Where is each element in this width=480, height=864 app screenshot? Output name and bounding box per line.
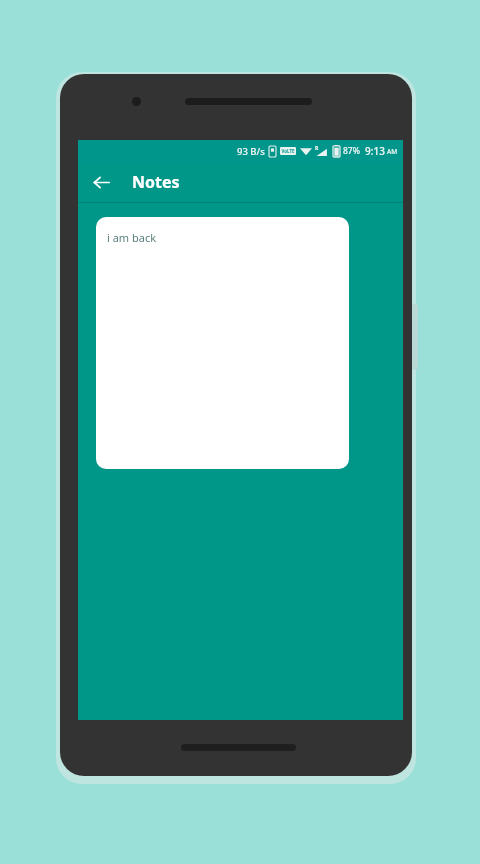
staticText: 93 B/s <box>237 145 265 158</box>
button[interactable]: i am back <box>96 217 349 469</box>
staticText: Notes <box>132 171 180 193</box>
staticText: AM <box>387 147 398 156</box>
staticText: 9:13 <box>365 144 385 158</box>
staticText: R <box>315 145 319 152</box>
staticText: i am back <box>107 230 157 245</box>
button[interactable]: Back <box>84 165 118 199</box>
staticText: 87% <box>343 145 360 157</box>
staticText: VoLTE <box>281 148 295 154</box>
